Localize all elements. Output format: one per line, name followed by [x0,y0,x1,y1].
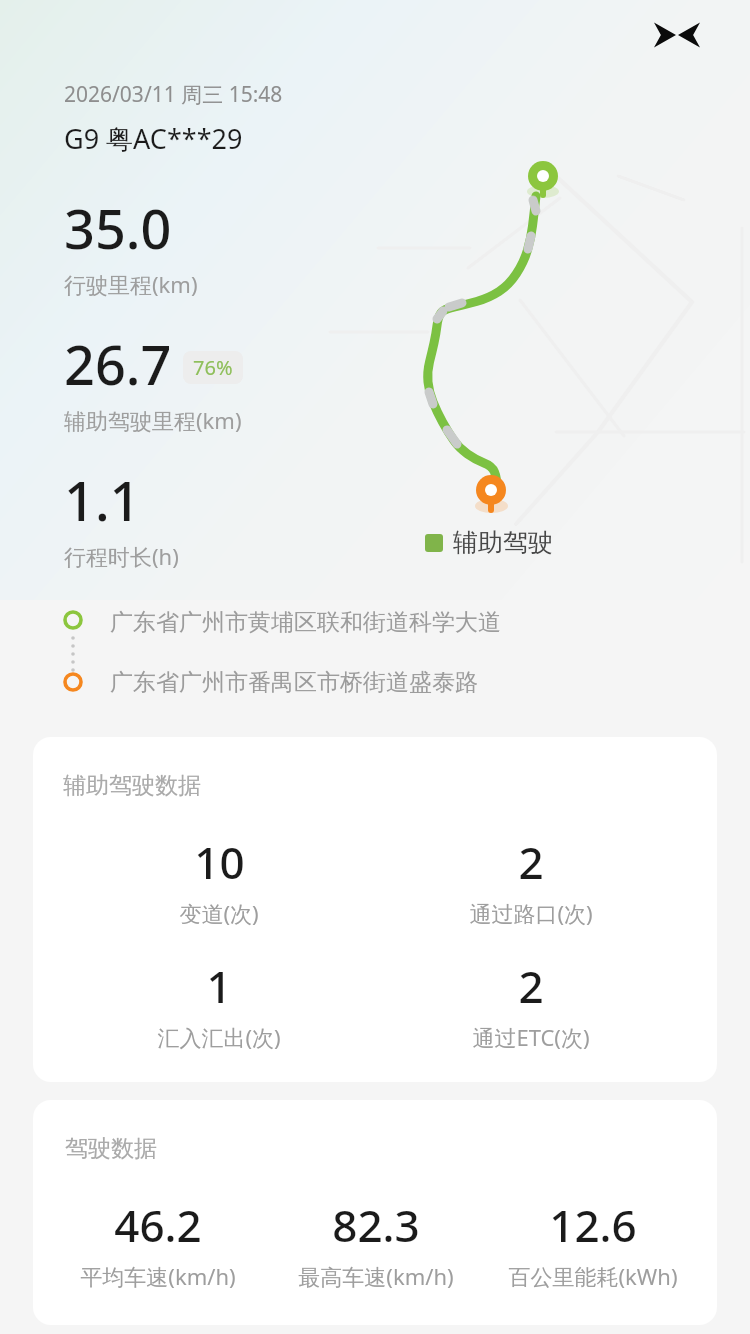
staticText: 46.2 [114,1195,202,1255]
staticText: 最高车速(km/h) [298,1261,454,1291]
staticText: 百公里能耗(kWh) [508,1261,678,1291]
staticText: 2 [518,832,544,892]
staticText: 通过路口(次) [469,898,593,928]
staticText: 广东省广州市番禺区市桥街道盛泰路 [110,668,478,697]
staticText: 变道(次) [179,898,259,928]
staticText: 82.3 [332,1195,420,1255]
staticText: 辅助驾驶 [453,527,553,558]
staticText: 26.7 [64,327,172,401]
staticText: 2026/03/11 周三 15:48 [64,80,283,109]
staticText: 76% [193,354,233,381]
staticText: 12.6 [549,1195,637,1255]
staticText: 1.1 [64,463,141,537]
staticText: 辅助驾驶数据 [63,771,201,800]
staticText: 通过ETC(次) [472,1022,590,1052]
staticText: 行程时长(h) [64,541,179,571]
staticText: 广东省广州市黄埔区联和街道科学大道 [110,608,501,637]
button[interactable]: 驾驶数据 [33,1100,717,1325]
staticText: 35.0 [64,191,172,265]
button[interactable]: XPeng [648,6,706,64]
staticText: G9 粤AC***29 [64,120,243,157]
staticText: 汇入汇出(次) [157,1022,281,1052]
staticText: 10 [194,832,245,892]
staticText: 行驶里程(km) [64,269,198,299]
staticText: 2 [518,956,544,1016]
staticText: 1 [206,956,232,1016]
staticText: 驾驶数据 [65,1134,157,1163]
staticText: 平均车速(km/h) [80,1261,236,1291]
button[interactable]: 辅助驾驶数据 [33,737,717,1082]
staticText: 辅助驾驶里程(km) [64,405,242,435]
